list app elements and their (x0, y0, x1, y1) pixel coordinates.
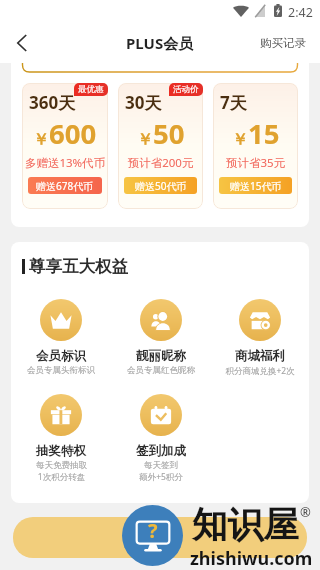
staticText: zhishiwu.com (190, 546, 313, 570)
staticText: 活动价 (173, 84, 199, 95)
staticText: ® (300, 503, 311, 521)
staticText: 靓丽昵称 (136, 348, 186, 364)
staticText: 多赠送13%代币 (22, 155, 108, 171)
staticText: ? (148, 517, 158, 544)
staticText: 15 (248, 115, 280, 152)
staticText: 30天 (125, 91, 162, 114)
staticText: ￥ (33, 130, 49, 150)
button[interactable]: 签到加成 (111, 394, 210, 482)
staticText: 赠送678代币 (36, 179, 94, 193)
button[interactable]: 7天 (213, 83, 298, 209)
staticText: 预计省200元 (118, 155, 203, 171)
staticText: 知识屋 (192, 503, 299, 548)
staticText: 会员专属红色昵称 (127, 365, 195, 376)
button[interactable]: 抽奖特权 (11, 394, 111, 482)
staticText: 7天 (220, 91, 247, 114)
staticText: 尊享五大权益 (29, 256, 128, 277)
staticText: 会员专属头衔标识 (27, 365, 95, 376)
staticText: 签到加成 (136, 443, 186, 459)
staticText: 50 (153, 115, 185, 152)
staticText: 最优惠 (78, 84, 104, 95)
staticText: 2:42 (288, 4, 313, 21)
button[interactable]: 靓丽昵称 (111, 299, 210, 376)
staticText: 积分商城兑换+2次 (225, 365, 295, 377)
staticText: 600 (49, 115, 97, 152)
button[interactable]: 商城福利 (210, 299, 309, 377)
staticText: 赠送15代币 (230, 179, 282, 193)
staticText: 每天签到 额外+5积分 (139, 460, 183, 482)
staticText: PLUS会员 (126, 33, 194, 53)
staticText: 会员标识 (36, 348, 86, 364)
staticText: 360天 (29, 91, 76, 114)
staticText: ￥ (137, 130, 153, 150)
button[interactable]: 购买记录 (246, 28, 320, 58)
button[interactable]: Back (4, 25, 40, 61)
staticText: 预计省35元 (213, 155, 298, 171)
staticText: 赠送50代币 (135, 179, 187, 193)
button[interactable]: 30天 (118, 83, 203, 209)
button[interactable]: 360天 (22, 83, 108, 209)
button[interactable]: 立即开通会员 (13, 517, 307, 558)
staticText: 购买记录 (260, 36, 306, 50)
staticText: 商城福利 (235, 348, 285, 364)
staticText: 抽奖特权 (36, 443, 86, 459)
staticText: ￥ (232, 130, 248, 150)
staticText: 每天免费抽取 1次积分转盘 (36, 460, 87, 482)
button[interactable]: 会员标识 (11, 299, 111, 376)
